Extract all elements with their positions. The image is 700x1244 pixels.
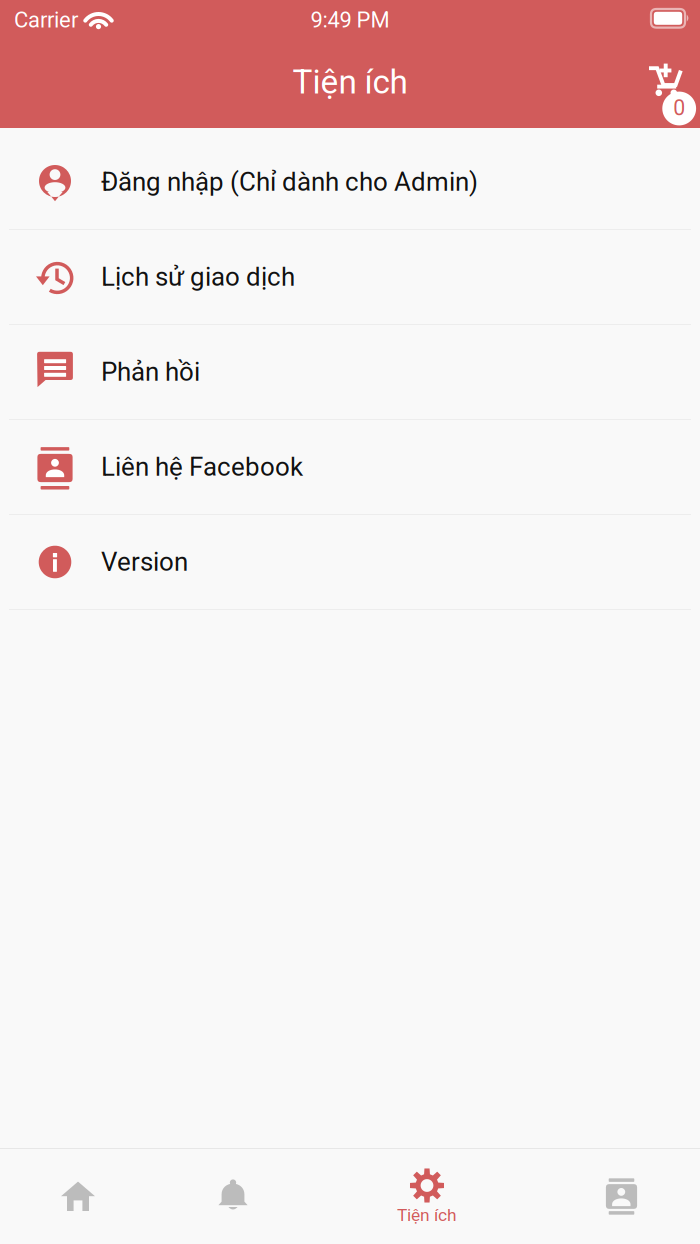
staticText: Tiện ích — [397, 1205, 457, 1225]
staticText: Carrier — [14, 7, 78, 33]
staticText: Liên hệ Facebook — [101, 452, 303, 482]
staticText: 9:49 PM — [310, 7, 389, 33]
button[interactable]: Version — [0, 515, 700, 610]
staticText: Version — [101, 547, 188, 577]
button[interactable]: Notifications — [175, 1149, 350, 1244]
button[interactable]: Contacts — [525, 1149, 700, 1244]
button[interactable]: Cart — [640, 50, 700, 128]
staticText: Tiện ích — [292, 62, 407, 102]
button[interactable]: Liên hệ Facebook — [0, 420, 700, 515]
button[interactable]: Phản hồi — [0, 325, 700, 420]
button[interactable]: Đăng nhập (Chỉ dành cho Admin) — [0, 135, 700, 230]
staticText: 0 — [673, 95, 685, 120]
staticText: Đăng nhập (Chỉ dành cho Admin) — [101, 167, 478, 197]
button[interactable]: Lịch sử giao dịch — [0, 230, 700, 325]
staticText: Phản hồi — [101, 357, 200, 387]
staticText: Lịch sử giao dịch — [101, 262, 295, 292]
button[interactable]: Home — [0, 1149, 175, 1244]
button[interactable]: Tiện ích — [350, 1149, 525, 1244]
